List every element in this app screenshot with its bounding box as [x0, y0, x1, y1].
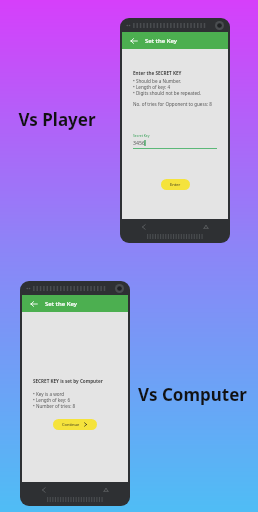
- staticText: • Length of key: 6: [33, 397, 71, 403]
- other: Back: [130, 37, 138, 45]
- staticText: • Number of tries: 8: [33, 403, 76, 409]
- staticText: Enter the SECRET KEY: [133, 70, 182, 76]
- staticText: Vs Player: [18, 108, 96, 131]
- button[interactable]: Back: [127, 34, 140, 47]
- staticText: Continue: [62, 422, 80, 427]
- staticText: Secret Key: [133, 133, 150, 138]
- staticText: • Key is a word: [33, 391, 65, 397]
- button[interactable]: Back: [27, 297, 40, 310]
- staticText: Enter: [170, 182, 181, 187]
- staticText: Set the Key: [145, 37, 177, 45]
- button[interactable]: Continue: [53, 419, 97, 430]
- button[interactable]: Back: [38, 484, 50, 496]
- button[interactable]: Home: [100, 484, 112, 496]
- button[interactable]: Home: [200, 221, 212, 233]
- staticText: Vs Computer: [138, 383, 247, 406]
- staticText: • Digits should not be repeated.: [133, 90, 202, 96]
- staticText: 3456: [133, 139, 145, 146]
- button[interactable]: Enter: [161, 179, 190, 190]
- button[interactable]: Back: [138, 221, 150, 233]
- other: Back: [30, 300, 38, 308]
- staticText: Set the Key: [45, 300, 77, 308]
- staticText: SECRET KEY is set by Computer: [33, 378, 103, 384]
- staticText: • Should be a Number.: [133, 78, 181, 84]
- staticText: No. of tries for Opponent to guess: 8: [133, 101, 212, 107]
- staticText: • Length of key: 4: [133, 84, 171, 90]
